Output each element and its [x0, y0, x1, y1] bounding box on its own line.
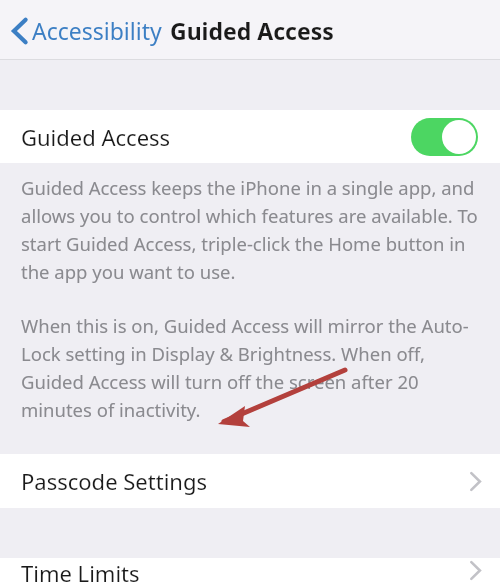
staticText: Guided Access [21, 122, 171, 152]
staticText: Guided Access [170, 15, 334, 46]
staticText: Accessibility [32, 15, 162, 46]
other: Back to Accessibility [12, 18, 28, 44]
staticText: Passcode Settings [21, 466, 207, 496]
button[interactable]: Back to Accessibility [12, 15, 162, 46]
button[interactable]: Guided Access toggle, on [411, 118, 478, 156]
button[interactable]: Guided Access [0, 110, 500, 163]
staticText: Time Limits [21, 558, 140, 582]
staticText: When this is on, Guided Access will mirr… [21, 313, 486, 422]
button[interactable]: Passcode Settings [0, 454, 500, 508]
staticText: Guided Access keeps the iPhone in a sing… [21, 175, 486, 284]
button[interactable]: Time Limits [0, 558, 500, 582]
